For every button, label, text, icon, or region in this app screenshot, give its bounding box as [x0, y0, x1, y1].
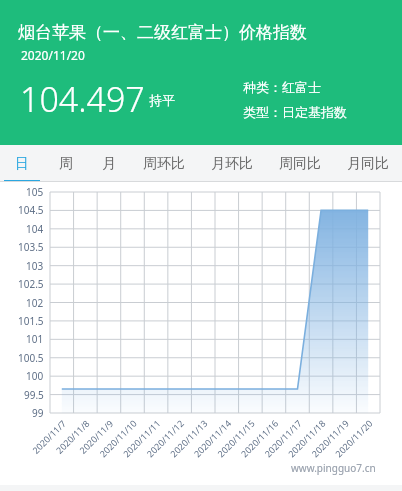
staticText: 周同比 — [279, 155, 321, 173]
staticText: 周环比 — [143, 155, 185, 173]
button[interactable]: 周 — [44, 145, 87, 182]
staticText: 烟台苹果（一、二级红富士）价格指数 — [18, 22, 307, 43]
button[interactable]: 周同比 — [266, 145, 334, 182]
staticText: 月环比 — [211, 155, 253, 173]
staticText: 类型：日定基指数 — [243, 104, 347, 120]
staticText: 日 — [15, 155, 29, 173]
staticText: 2020/11/20 — [21, 47, 85, 63]
staticText: 周 — [59, 155, 73, 173]
button[interactable]: 月 — [87, 145, 130, 182]
button[interactable]: 周环比 — [130, 145, 198, 182]
staticText: 104.497 — [20, 76, 145, 122]
staticText: 月 — [102, 155, 116, 173]
button[interactable]: 日 — [0, 145, 44, 182]
staticText: 月同比 — [347, 155, 389, 173]
button[interactable]: 月环比 — [198, 145, 266, 182]
staticText: 持平 — [149, 92, 175, 108]
button[interactable]: 月同比 — [334, 145, 402, 182]
staticText: 种类：红富士 — [243, 79, 321, 95]
